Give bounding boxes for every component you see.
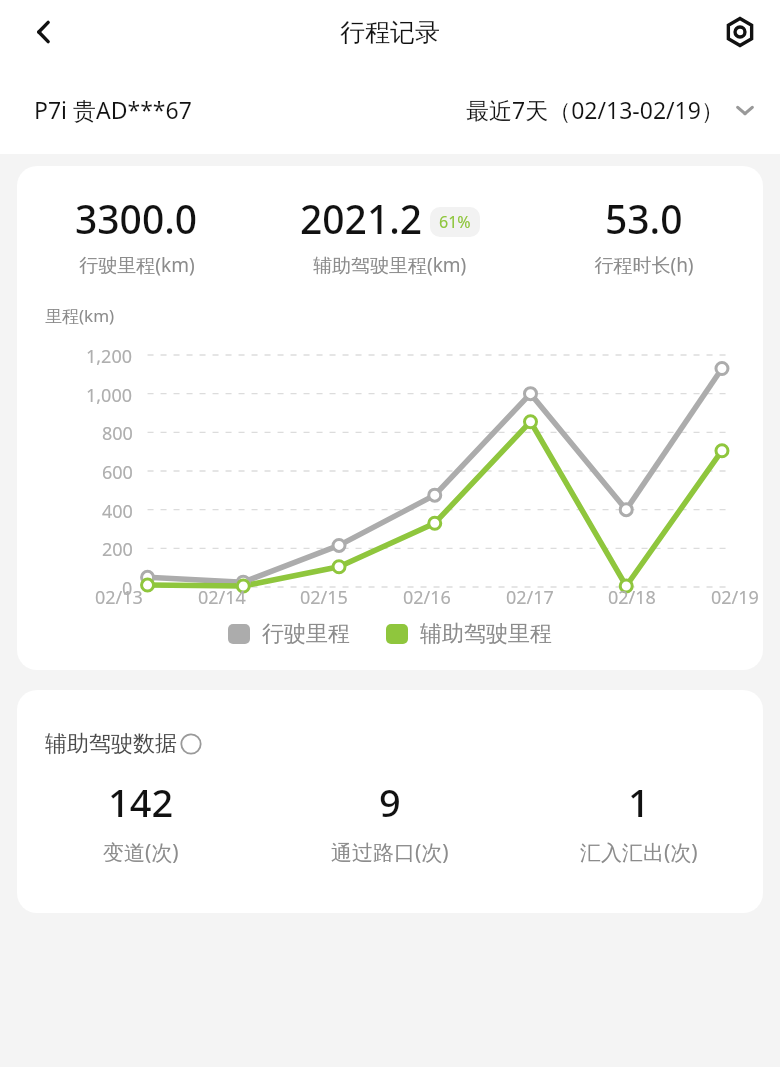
staticText: 53.0 (605, 192, 683, 245)
button[interactable]: 辅助驾驶数据 (45, 730, 202, 758)
staticText: 行程时长(h) (594, 252, 694, 278)
staticText: 行驶里程(km) (79, 252, 195, 278)
staticText: 行驶里程 (262, 620, 350, 648)
staticText: 辅助驾驶里程 (420, 620, 552, 648)
staticText: 辅助驾驶里程(km) (313, 252, 467, 278)
staticText: 1 (628, 776, 650, 828)
staticText: 02/19 (711, 585, 759, 610)
staticText: 0 (122, 576, 133, 601)
staticText: 1,200 (86, 344, 133, 369)
staticText: 142 (108, 776, 174, 828)
staticText: 通过路口(次) (331, 838, 449, 867)
staticText: 9 (379, 776, 401, 828)
staticText: 汇入汇出(次) (580, 838, 698, 867)
staticText: 3300.0 (75, 192, 198, 245)
staticText: 变道(次) (103, 838, 179, 867)
staticText: 02/18 (608, 585, 656, 610)
staticText: 02/15 (300, 585, 348, 610)
button[interactable]: Settings (714, 6, 766, 58)
staticText: 里程(km) (45, 304, 115, 327)
staticText: 02/13 (95, 585, 143, 610)
staticText: 2021.2 (300, 192, 423, 245)
staticText: 600 (102, 460, 133, 485)
staticText: 最近7天（02/13-02/19） (466, 94, 724, 125)
staticText: 800 (102, 421, 133, 446)
staticText: 02/14 (198, 585, 246, 610)
staticText: 行程记录 (340, 17, 440, 48)
staticText: P7i 贵AD***67 (34, 94, 192, 125)
button[interactable]: Back (18, 6, 70, 58)
button[interactable]: 最近7天（02/13-02/19） (466, 94, 758, 125)
staticText: 02/17 (506, 585, 554, 610)
staticText: 1,000 (86, 383, 133, 408)
staticText: 61% (439, 211, 471, 233)
staticText: 200 (102, 537, 133, 562)
staticText: 02/16 (403, 585, 451, 610)
staticText: 辅助驾驶数据 (45, 730, 177, 758)
staticText: 400 (102, 499, 133, 524)
